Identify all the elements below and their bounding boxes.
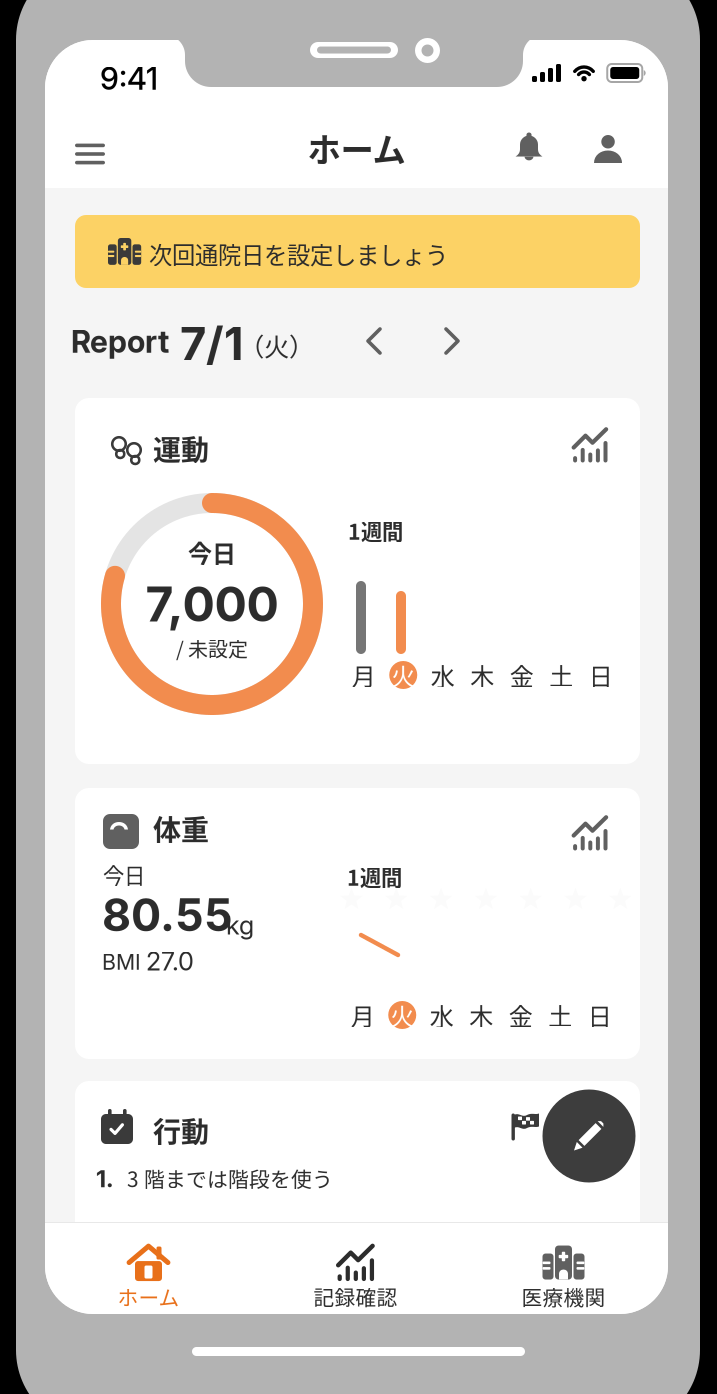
button[interactable]: ホーム bbox=[45, 1232, 252, 1323]
staticText: 金 bbox=[509, 998, 533, 1032]
button[interactable]: Weight chart bbox=[567, 812, 613, 854]
staticText: Report bbox=[71, 323, 169, 360]
button[interactable]: Account bbox=[582, 123, 634, 175]
staticText: 木 bbox=[470, 658, 494, 692]
button[interactable]: Add entry bbox=[529, 1076, 649, 1196]
staticText: 土 bbox=[549, 658, 573, 692]
staticText: 日 bbox=[588, 998, 612, 1032]
staticText: 行動 bbox=[153, 1110, 209, 1150]
staticText: 火 bbox=[391, 658, 415, 692]
button[interactable]: 記録確認 bbox=[252, 1232, 459, 1323]
staticText: 土 bbox=[548, 998, 572, 1032]
staticText: 今日 bbox=[188, 535, 236, 569]
staticText: 日 bbox=[589, 658, 613, 692]
staticText: 1週間 bbox=[348, 515, 403, 546]
staticText: 1週間 bbox=[347, 861, 402, 892]
staticText: 今日 bbox=[103, 859, 145, 890]
staticText: / 未設定 bbox=[176, 633, 248, 662]
staticText: ホーム bbox=[307, 123, 405, 172]
staticText: 水 bbox=[431, 658, 455, 692]
button[interactable]: 医療機関 bbox=[459, 1232, 668, 1323]
staticText: （火） bbox=[239, 327, 314, 364]
staticText: 医療機関 bbox=[521, 1281, 605, 1311]
staticText: 水 bbox=[430, 998, 454, 1032]
button[interactable]: Exercise chart bbox=[567, 424, 613, 466]
staticText: 9:41 bbox=[100, 60, 158, 97]
button[interactable]: 次回通院日を設定しましょう bbox=[75, 215, 640, 288]
staticText: 次回通院日を設定しましょう bbox=[149, 237, 448, 271]
staticText: 7/1 bbox=[180, 316, 244, 371]
staticText: 80.55 bbox=[102, 888, 233, 942]
button[interactable]: Notifications bbox=[503, 122, 555, 174]
staticText: 火 bbox=[390, 998, 414, 1032]
button[interactable]: Previous day bbox=[348, 317, 402, 365]
staticText: 7,000 bbox=[145, 575, 278, 633]
staticText: BMI bbox=[102, 949, 141, 975]
staticText: 3 階までは階段を使う bbox=[127, 1163, 333, 1193]
staticText: 金 bbox=[510, 658, 534, 692]
staticText: 27.0 bbox=[146, 946, 194, 977]
staticText: 1. bbox=[96, 1164, 114, 1193]
staticText: 木 bbox=[469, 998, 493, 1032]
staticText: 月 bbox=[352, 658, 376, 692]
staticText: 月 bbox=[351, 998, 375, 1032]
staticText: 体重 bbox=[153, 808, 209, 848]
staticText: ホーム bbox=[117, 1281, 179, 1311]
staticText: kg bbox=[226, 910, 254, 941]
staticText: 運動 bbox=[153, 428, 209, 468]
button[interactable]: Next day bbox=[424, 317, 478, 365]
button[interactable]: Menu bbox=[59, 123, 121, 185]
staticText: 記録確認 bbox=[313, 1281, 397, 1311]
